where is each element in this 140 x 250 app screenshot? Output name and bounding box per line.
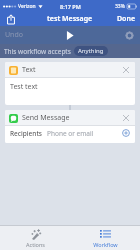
staticText: Send Message (22, 113, 70, 123)
staticText: 8:17 PM (60, 3, 81, 10)
staticText: Verizon (18, 3, 36, 10)
staticText: Workflow (93, 241, 118, 248)
button[interactable]: Done (113, 12, 140, 26)
button[interactable]: Add recipient (121, 128, 131, 138)
button[interactable]: Text (5, 62, 135, 105)
button[interactable]: Anything (74, 46, 108, 56)
staticText: Undo (5, 30, 23, 40)
button[interactable]: Workflow (70, 226, 140, 250)
button[interactable]: Undo (0, 27, 28, 43)
button[interactable]: Remove Text action (120, 64, 131, 75)
staticText: test Message (47, 14, 93, 24)
staticText: This workflow accepts (4, 47, 71, 56)
staticText: Anything (78, 47, 104, 55)
button[interactable]: Send Message (5, 110, 135, 143)
button[interactable]: Settings (122, 28, 136, 42)
staticText: Test text (10, 82, 38, 92)
staticText: Actions (26, 241, 45, 248)
staticText: 33% (115, 3, 125, 10)
button[interactable]: Actions (0, 226, 70, 250)
button[interactable]: Remove Send Message action (120, 112, 131, 123)
staticText: Recipients (10, 129, 43, 138)
staticText: Done (117, 14, 136, 24)
button[interactable]: Share (4, 12, 18, 26)
staticText: Phone or email (47, 129, 121, 138)
staticText: Text (22, 65, 36, 75)
button[interactable]: Run (62, 27, 78, 43)
